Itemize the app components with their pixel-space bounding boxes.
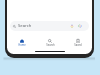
staticText: Search: [18, 23, 32, 29]
button[interactable]: Saved: [64, 38, 92, 49]
staticText: Home: [18, 43, 26, 47]
button[interactable]: Voice search: [70, 24, 74, 28]
staticText: Saved: [74, 43, 82, 47]
button[interactable]: Google Lens: [78, 24, 82, 28]
staticText: Search: [46, 43, 55, 47]
button[interactable]: Search: [36, 38, 64, 49]
button[interactable]: Search: [10, 21, 89, 31]
button[interactable]: Home: [7, 38, 36, 49]
